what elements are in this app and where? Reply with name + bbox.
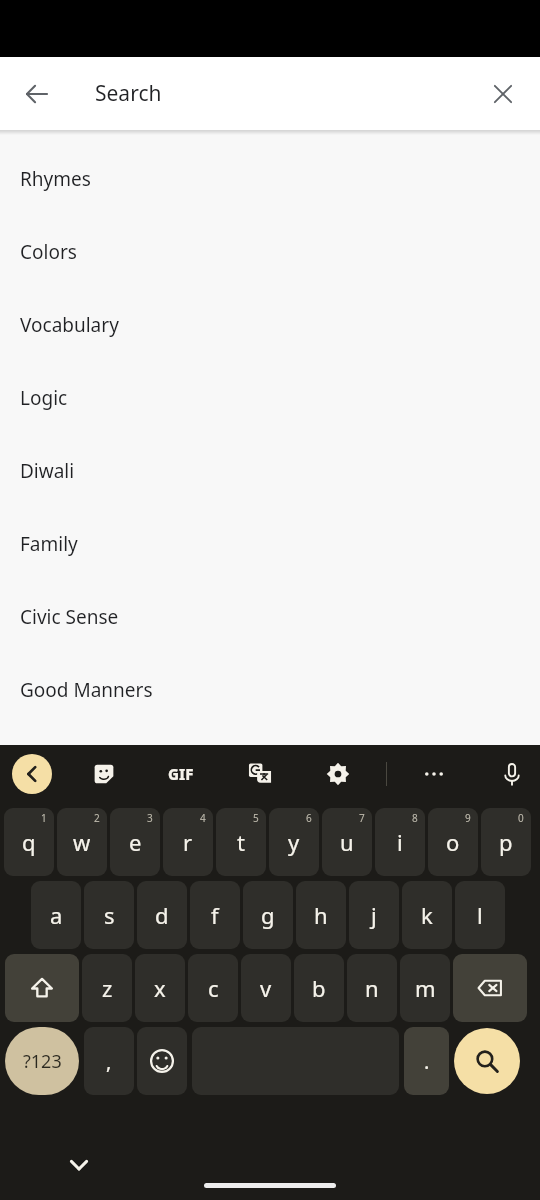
staticText: y — [288, 827, 300, 857]
staticText: q — [22, 827, 36, 857]
button[interactable]: q — [4, 808, 54, 876]
button[interactable]: Settings — [314, 750, 362, 798]
button[interactable]: Civic Sense — [0, 580, 540, 653]
button[interactable]: z — [82, 954, 132, 1022]
staticText: , — [106, 1048, 112, 1075]
button[interactable]: Good Manners — [0, 653, 540, 726]
staticText: s — [104, 900, 115, 930]
button[interactable]: Diwali — [0, 434, 540, 507]
button[interactable]: Voice input — [488, 750, 536, 798]
button[interactable]: Back — [14, 71, 60, 117]
staticText: 8 — [412, 811, 418, 825]
button[interactable]: GIF — [156, 749, 206, 799]
staticText: 1 — [41, 811, 47, 825]
staticText: h — [314, 900, 328, 930]
button[interactable]: y — [269, 808, 319, 876]
button[interactable]: l — [455, 881, 505, 949]
staticText: u — [340, 827, 354, 857]
button[interactable]: w — [57, 808, 107, 876]
button[interactable]: Logic — [0, 361, 540, 434]
button[interactable]: t — [216, 808, 266, 876]
button[interactable]: s — [84, 881, 134, 949]
staticText: v — [260, 973, 272, 1003]
button[interactable] — [137, 1027, 187, 1095]
button[interactable]: Vocabulary — [0, 288, 540, 361]
button[interactable]: n — [347, 954, 397, 1022]
staticText: 0 — [518, 811, 524, 825]
button[interactable]: b — [294, 954, 344, 1022]
button[interactable]: More options — [410, 750, 458, 798]
staticText: 2 — [94, 811, 100, 825]
staticText: g — [261, 900, 275, 930]
staticText: Diwali — [20, 458, 75, 484]
staticText: . — [424, 1048, 430, 1075]
button[interactable]: e — [110, 808, 160, 876]
button[interactable]: j — [349, 881, 399, 949]
staticText: l — [477, 900, 483, 930]
button[interactable]: Hide keyboard — [57, 1143, 101, 1187]
staticText: Vocabulary — [20, 312, 119, 338]
button[interactable]: ?123 — [5, 1027, 79, 1095]
button[interactable]: . — [404, 1027, 449, 1095]
staticText: Rhymes — [20, 166, 91, 192]
staticText: o — [446, 827, 460, 857]
button[interactable]: g — [243, 881, 293, 949]
staticText: d — [155, 900, 169, 930]
staticText: 3 — [147, 811, 153, 825]
button[interactable]: Clear — [480, 71, 526, 117]
button[interactable]: a — [31, 881, 81, 949]
staticText: 4 — [200, 811, 206, 825]
staticText: 9 — [465, 811, 471, 825]
staticText: x — [154, 973, 166, 1003]
button[interactable] — [453, 954, 527, 1022]
button[interactable]: v — [241, 954, 291, 1022]
staticText: z — [102, 973, 113, 1003]
button[interactable] — [5, 954, 79, 1022]
button[interactable]: c — [188, 954, 238, 1022]
button[interactable]: Back — [12, 754, 52, 794]
button[interactable]: u — [322, 808, 372, 876]
button[interactable]: x — [135, 954, 185, 1022]
staticText: f — [211, 900, 219, 930]
button[interactable]: i — [375, 808, 425, 876]
button[interactable]: p — [481, 808, 531, 876]
staticText: Search — [95, 79, 162, 108]
button[interactable]: Colors — [0, 215, 540, 288]
button[interactable]: d — [137, 881, 187, 949]
button[interactable]: h — [296, 881, 346, 949]
button[interactable]: r — [163, 808, 213, 876]
staticText: Colors — [20, 239, 77, 265]
staticText: t — [237, 827, 245, 857]
staticText: Good Manners — [20, 677, 153, 703]
button[interactable]: o — [428, 808, 478, 876]
button[interactable]: Translate — [236, 750, 284, 798]
staticText: 6 — [306, 811, 312, 825]
button[interactable]: Rhymes — [0, 142, 540, 215]
staticText: 5 — [253, 811, 259, 825]
staticText: GIF — [168, 764, 194, 784]
staticText: k — [421, 900, 433, 930]
button[interactable]: k — [402, 881, 452, 949]
staticText: p — [499, 827, 513, 857]
staticText: Family — [20, 531, 78, 557]
staticText: n — [365, 973, 379, 1003]
staticText: e — [129, 827, 142, 857]
button[interactable]: f — [190, 881, 240, 949]
staticText: w — [73, 827, 91, 857]
staticText: r — [183, 827, 193, 857]
staticText: a — [50, 900, 63, 930]
button[interactable]: Family — [0, 507, 540, 580]
staticText: b — [312, 973, 326, 1003]
staticText: i — [397, 827, 403, 857]
staticText: m — [415, 973, 436, 1003]
staticText: Logic — [20, 385, 68, 411]
staticText: c — [208, 973, 219, 1003]
staticText: ?123 — [23, 1049, 62, 1074]
button[interactable]: , — [84, 1027, 134, 1095]
button[interactable]: Stickers — [80, 750, 128, 798]
staticText: j — [371, 900, 377, 930]
button[interactable] — [454, 1028, 520, 1094]
staticText: Civic Sense — [20, 604, 119, 630]
button[interactable]: m — [400, 954, 450, 1022]
